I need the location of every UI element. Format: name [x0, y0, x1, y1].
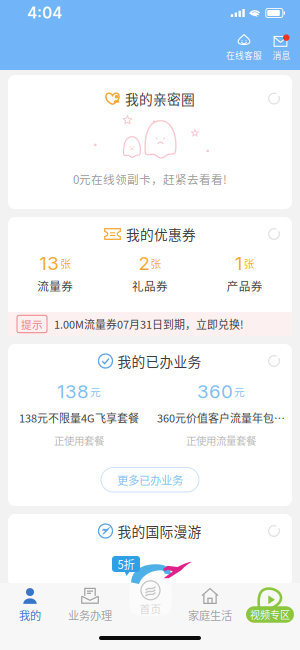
button[interactable]: 提示 — [8, 312, 292, 336]
staticText: 138 — [57, 380, 89, 403]
staticText: 1.00M流量券07月31日到期，立即兑换! — [54, 316, 244, 332]
staticText: 2 — [138, 252, 149, 274]
staticText: 礼品券 — [132, 277, 168, 294]
button[interactable]: 我的亲密圈 — [8, 75, 292, 209]
staticText: 张 — [150, 255, 161, 271]
staticText: 我的亲密圈 — [125, 89, 195, 109]
staticText: 首页 — [139, 601, 161, 616]
staticText: 消息 — [272, 49, 290, 62]
staticText: 正使用流量套餐 — [186, 433, 256, 448]
staticText: 360 — [197, 380, 233, 403]
staticText: 138元不限量4G飞享套餐 — [19, 410, 139, 426]
staticText: 张 — [60, 255, 71, 271]
button[interactable]: 138 — [8, 378, 150, 450]
staticText: 我的 — [19, 607, 41, 623]
staticText: 产品券 — [227, 277, 263, 294]
button[interactable]: 1 — [197, 252, 292, 294]
staticText: 元 — [90, 384, 101, 399]
staticText: 我的已办业务 — [117, 351, 201, 371]
button[interactable]: 2 — [103, 252, 197, 294]
button[interactable]: 我的国际漫游 — [8, 514, 292, 586]
button[interactable]: 首页 — [120, 583, 180, 627]
staticText: 正使用套餐 — [54, 433, 104, 448]
staticText: 13 — [39, 252, 59, 274]
staticText: 5折 — [117, 556, 134, 572]
button[interactable]: 首页 — [129, 578, 172, 616]
staticText: 1 — [235, 252, 243, 274]
staticText: 在线客服 — [226, 49, 262, 62]
staticText: 360元价值客户流量年包… — [157, 410, 285, 426]
button[interactable]: 在线客服 — [225, 34, 263, 62]
button[interactable]: 消息 — [272, 34, 291, 62]
button[interactable]: 我的 — [0, 583, 60, 627]
button[interactable]: 视频专区 — [240, 583, 300, 627]
staticText: 元 — [234, 384, 245, 399]
button[interactable]: 更多已办业务 — [101, 468, 199, 492]
button[interactable]: 家庭生活 — [180, 583, 240, 627]
staticText: 我的优惠券 — [126, 224, 196, 244]
staticText: 张 — [244, 255, 255, 271]
staticText: 视频专区 — [250, 607, 290, 622]
staticText: 流量券 — [37, 277, 73, 294]
button[interactable]: 业务办理 — [60, 583, 120, 627]
staticText: 家庭生活 — [188, 607, 232, 623]
button[interactable]: 我的已办业务 — [8, 344, 292, 378]
staticText: 0元在线领副卡，赶紧去看看! — [73, 171, 227, 187]
staticText: 业务办理 — [68, 607, 112, 623]
staticText: 4:04 — [27, 4, 62, 22]
button[interactable]: 360 — [150, 378, 292, 450]
staticText: 更多已办业务 — [117, 472, 183, 488]
button[interactable]: 13 — [8, 252, 103, 294]
staticText: 我的国际漫游 — [117, 521, 201, 541]
staticText: 提示 — [21, 316, 43, 332]
button[interactable]: 我的优惠券 — [8, 217, 292, 251]
